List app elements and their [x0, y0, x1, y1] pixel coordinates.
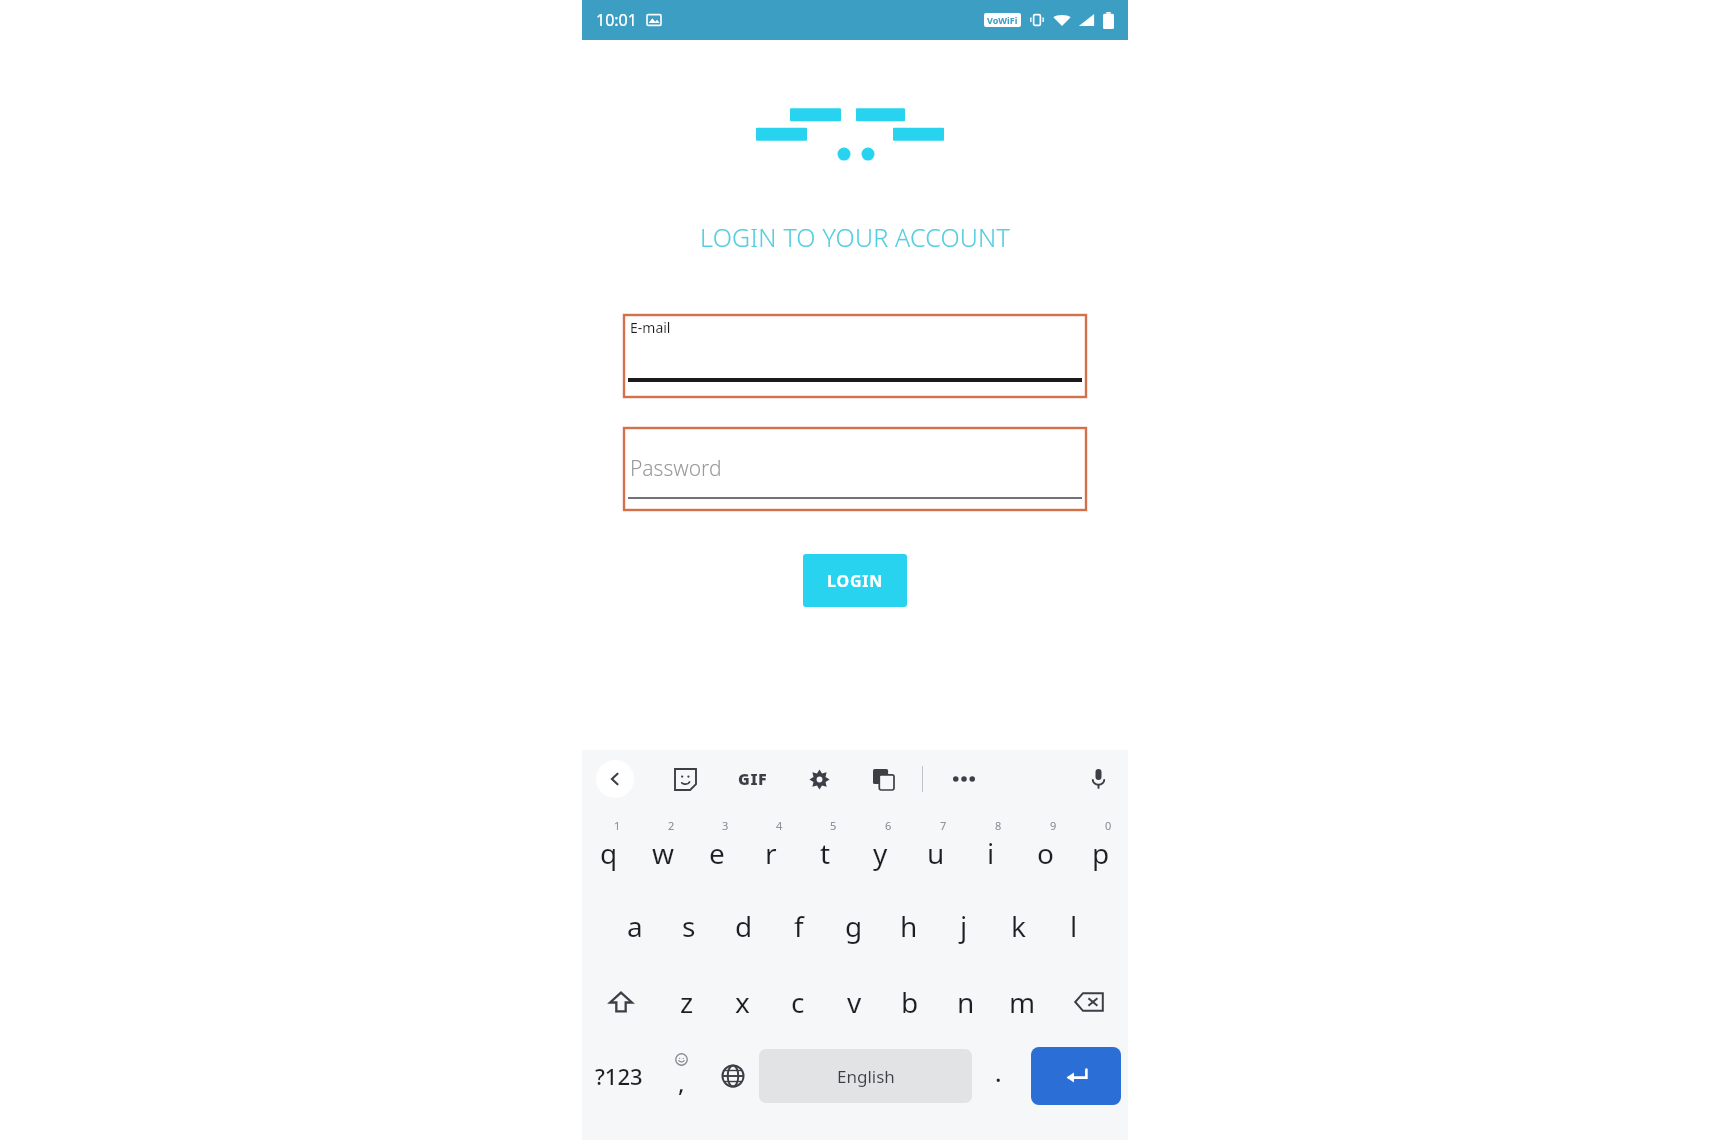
staticText: c [791, 983, 805, 1021]
staticText: r [765, 834, 777, 872]
staticText: w [652, 834, 675, 872]
button[interactable]: 6 [853, 812, 908, 888]
button[interactable]: Voice input [1082, 763, 1114, 795]
button[interactable]: 5 [798, 812, 853, 888]
staticText: x [735, 983, 750, 1021]
button[interactable]: 4 [744, 812, 798, 888]
staticText: e [709, 834, 725, 872]
button[interactable]: GIF [738, 768, 768, 790]
staticText: , [678, 1066, 685, 1099]
staticText: j [960, 907, 968, 945]
staticText: GIF [738, 768, 768, 790]
staticText: a [627, 907, 643, 945]
staticText: 4 [776, 818, 783, 833]
button[interactable]: l [1046, 888, 1101, 964]
staticText: English [837, 1065, 895, 1088]
button[interactable]: Back [596, 760, 634, 798]
button[interactable]: Password [624, 428, 1086, 510]
button[interactable]: n [938, 964, 994, 1040]
staticText: n [957, 983, 975, 1021]
staticText: VoWiFi [987, 14, 1018, 26]
button[interactable]: d [716, 888, 771, 964]
button[interactable]: Change language [707, 1040, 759, 1112]
staticText: k [1011, 907, 1026, 945]
staticText: t [820, 834, 831, 872]
staticText: y [873, 834, 888, 872]
staticText: . [995, 1056, 1002, 1089]
staticText: l [1070, 907, 1078, 945]
staticText: p [1092, 834, 1110, 872]
staticText: o [1037, 834, 1054, 872]
button[interactable]: , [655, 1040, 707, 1112]
button[interactable]: 9 [1018, 812, 1073, 888]
staticText: 2 [668, 818, 675, 833]
button[interactable]: h [881, 888, 936, 964]
button[interactable]: Enter [1031, 1047, 1121, 1105]
button[interactable]: 3 [690, 812, 744, 888]
button[interactable]: j [936, 888, 991, 964]
staticText: m [1009, 983, 1036, 1021]
staticText: f [794, 907, 804, 945]
button[interactable]: . [972, 1040, 1024, 1112]
button[interactable]: 0 [1073, 812, 1128, 888]
staticText: 8 [995, 818, 1002, 833]
staticText: 6 [885, 818, 892, 833]
button[interactable]: English [759, 1049, 972, 1103]
button[interactable]: Stickers [670, 764, 700, 794]
button[interactable]: E-mail [624, 315, 1086, 397]
button[interactable]: LOGIN [803, 554, 907, 607]
staticText: 0 [1105, 818, 1112, 833]
button[interactable]: z [659, 964, 714, 1040]
staticText: 5 [830, 818, 837, 833]
button[interactable]: 2 [636, 812, 690, 888]
button[interactable]: 1 [582, 812, 636, 888]
button[interactable]: 8 [963, 812, 1018, 888]
staticText: h [900, 907, 918, 945]
staticText: 1 [614, 818, 621, 833]
button[interactable]: s [662, 888, 716, 964]
button[interactable]: v [826, 964, 882, 1040]
staticText: z [680, 983, 694, 1021]
staticText: LOGIN [827, 570, 884, 592]
button[interactable]: x [714, 964, 770, 1040]
staticText: ?123 [595, 1061, 643, 1091]
staticText: 7 [940, 818, 947, 833]
button[interactable]: Backspace [1050, 964, 1128, 1040]
staticText: q [600, 834, 618, 872]
staticText: b [901, 983, 919, 1021]
staticText: i [987, 834, 995, 872]
staticText: 3 [722, 818, 729, 833]
staticText: Password [630, 454, 722, 483]
staticText: E-mail [630, 318, 671, 337]
button[interactable]: a [608, 888, 662, 964]
staticText: v [847, 983, 862, 1021]
button[interactable]: g [826, 888, 881, 964]
button[interactable]: More options [949, 764, 979, 794]
staticText: s [682, 907, 696, 945]
staticText: u [927, 834, 945, 872]
staticText: g [845, 907, 863, 945]
button[interactable]: 7 [908, 812, 963, 888]
staticText: 9 [1050, 818, 1057, 833]
staticText: 10:01 [596, 9, 637, 31]
button[interactable]: Settings [804, 764, 834, 794]
button[interactable]: Shift [582, 964, 659, 1040]
button[interactable]: ?123 [582, 1040, 655, 1112]
button[interactable]: k [991, 888, 1046, 964]
staticText: LOGIN TO YOUR ACCOUNT [582, 220, 1128, 254]
button[interactable]: b [882, 964, 938, 1040]
button[interactable]: f [771, 888, 826, 964]
button[interactable]: m [994, 964, 1050, 1040]
button[interactable]: Translate [868, 764, 898, 794]
staticText: d [735, 907, 753, 945]
button[interactable]: c [770, 964, 826, 1040]
